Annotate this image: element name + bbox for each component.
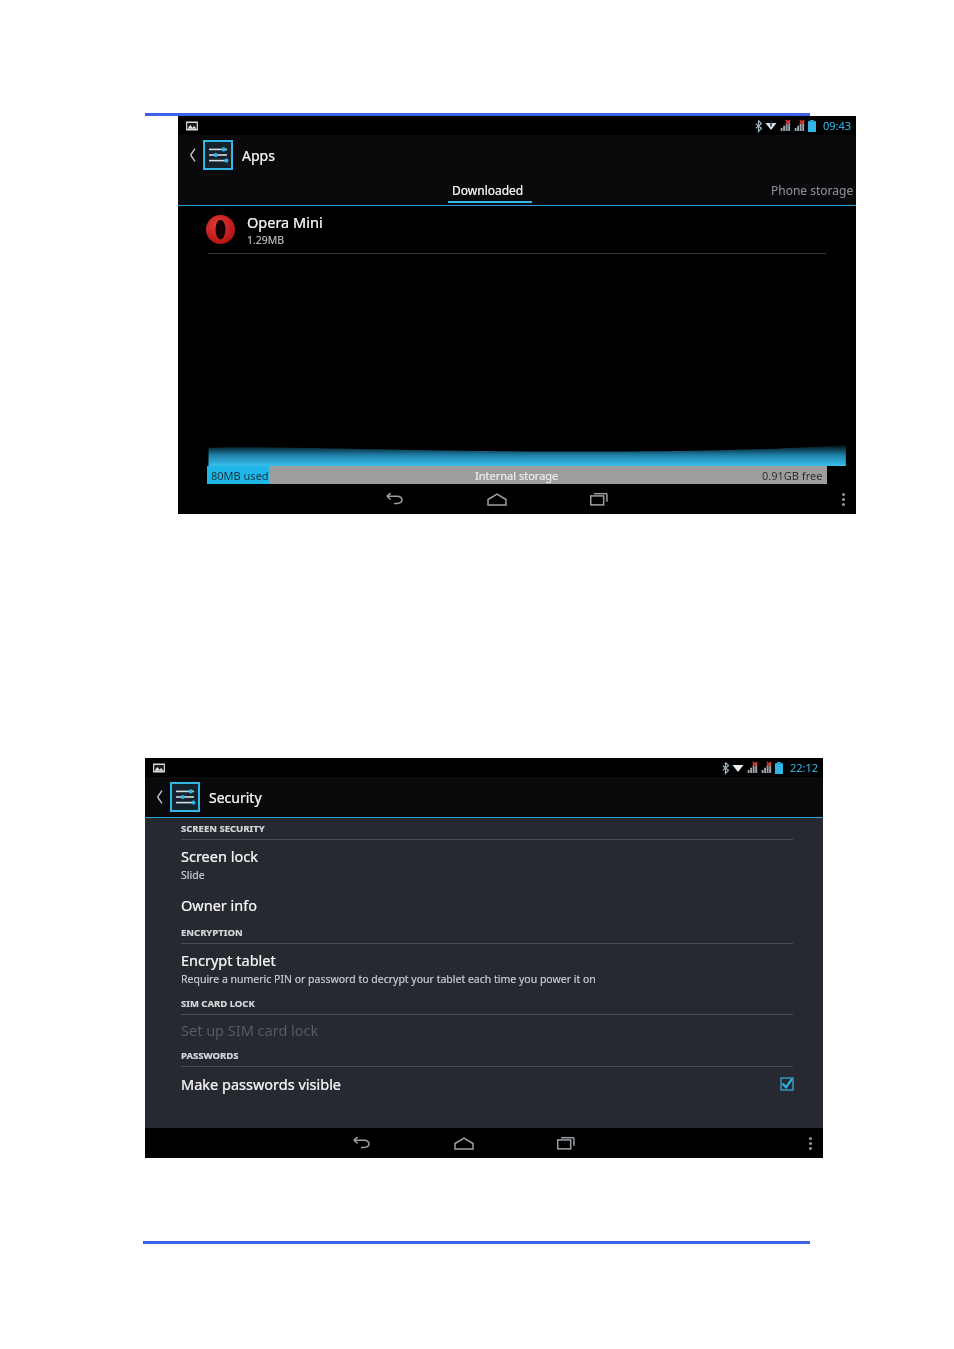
button[interactable]: Downloaded bbox=[338, 175, 638, 205]
button[interactable]: Back bbox=[149, 778, 171, 816]
staticText: PASSWORDS bbox=[181, 1049, 239, 1062]
staticText: Phone storage bbox=[771, 182, 854, 198]
staticText: 09:43 bbox=[823, 118, 852, 133]
staticText: Make passwords visible bbox=[181, 1074, 342, 1094]
staticText: 1.29MB bbox=[247, 233, 285, 247]
staticText: Slide bbox=[181, 868, 205, 882]
button[interactable]: More options bbox=[830, 486, 856, 512]
staticText: Encrypt tablet bbox=[181, 950, 276, 970]
button[interactable]: Opera Mini bbox=[178, 206, 856, 254]
button[interactable]: Phone storage bbox=[771, 175, 854, 205]
staticText: Owner info bbox=[181, 895, 258, 915]
staticText: Set up SIM card lock bbox=[181, 1020, 319, 1040]
button[interactable]: Make passwords visible bbox=[145, 1067, 823, 1101]
button[interactable]: Screen lock bbox=[145, 840, 823, 889]
staticText: Require a numeric PIN or password to dec… bbox=[181, 972, 596, 986]
button[interactable]: Home bbox=[442, 1129, 486, 1157]
button[interactable]: Recent apps bbox=[544, 1129, 588, 1157]
button[interactable]: Home bbox=[475, 485, 519, 513]
staticText: 0.91GB free bbox=[762, 468, 823, 483]
staticText: Security bbox=[209, 788, 262, 807]
staticText: ENCRYPTION bbox=[181, 926, 243, 939]
staticText: Internal storage bbox=[475, 468, 559, 483]
staticText: Screen lock bbox=[181, 846, 258, 866]
button[interactable]: Encrypt tablet bbox=[145, 944, 823, 993]
button[interactable]: Settings bbox=[204, 141, 232, 169]
button[interactable]: Back bbox=[373, 485, 417, 513]
button[interactable]: Owner info bbox=[145, 889, 823, 922]
staticText: Apps bbox=[242, 146, 275, 165]
staticText: 22:12 bbox=[790, 760, 819, 775]
staticText: Opera Mini bbox=[247, 212, 323, 232]
button[interactable]: Recent apps bbox=[577, 485, 621, 513]
staticText: 80MB used bbox=[211, 468, 269, 483]
button[interactable]: Back bbox=[340, 1129, 384, 1157]
button[interactable]: More options bbox=[797, 1130, 823, 1156]
staticText: SCREEN SECURITY bbox=[181, 822, 265, 835]
button[interactable]: Settings bbox=[171, 783, 199, 811]
button[interactable]: Back bbox=[182, 136, 204, 174]
staticText: Downloaded bbox=[452, 182, 524, 198]
staticText: SIM CARD LOCK bbox=[181, 997, 255, 1010]
